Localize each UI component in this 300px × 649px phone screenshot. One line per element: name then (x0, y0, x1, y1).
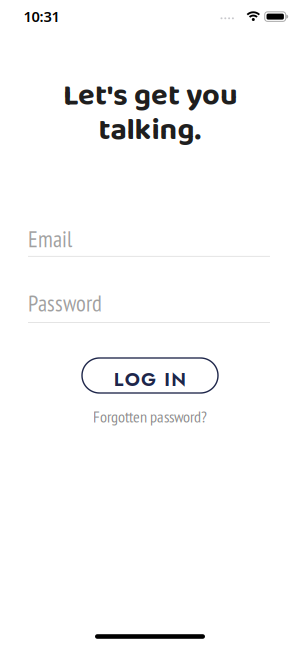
staticText: L (114, 366, 124, 393)
staticText: Password (28, 288, 102, 318)
staticText: 10:31 (23, 6, 59, 26)
staticText (157, 366, 163, 393)
button[interactable]: Forgotten password? (93, 406, 207, 427)
staticText: Let's get you (63, 71, 238, 120)
button[interactable]: L (82, 358, 218, 393)
button[interactable]: Password (28, 283, 270, 323)
staticText: Forgotten password? (93, 406, 207, 427)
staticText: talking. (98, 106, 201, 155)
button[interactable]: Email (28, 221, 270, 257)
staticText: O (125, 366, 140, 393)
staticText: G (141, 366, 156, 393)
staticText: Email (28, 224, 72, 253)
staticText: N (171, 366, 186, 393)
staticText: I (164, 366, 170, 393)
